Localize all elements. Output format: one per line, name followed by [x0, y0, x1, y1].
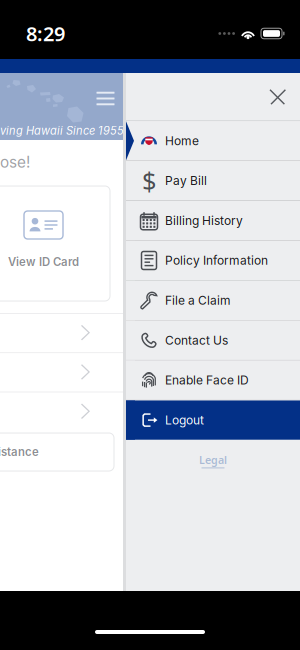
- staticText: Legal: [199, 453, 227, 467]
- staticText: Billing History: [165, 213, 243, 228]
- staticText: Pay Bill: [165, 173, 207, 188]
- button[interactable]: Logout: [126, 400, 300, 440]
- staticText: Policy Information: [165, 253, 268, 268]
- staticText: View ID Card: [8, 255, 79, 269]
- button[interactable]: Enable Face ID: [126, 361, 300, 400]
- button[interactable]: Home: [126, 121, 300, 160]
- button[interactable]: Contact Us: [126, 321, 300, 360]
- button[interactable]: $: [126, 161, 300, 200]
- staticText: File a Claim: [165, 293, 231, 308]
- staticText: $: [142, 164, 156, 197]
- button[interactable]: Menu item: [0, 392, 126, 431]
- button[interactable]: File a Claim: [126, 281, 300, 320]
- staticText: Contact Us: [165, 333, 228, 347]
- staticText: Need assistance: [0, 445, 39, 459]
- staticText: Enable Face ID: [165, 373, 249, 387]
- button[interactable]: Menu item: [0, 352, 126, 392]
- button[interactable]: Legal: [126, 440, 300, 474]
- button[interactable]: Close menu: [261, 80, 295, 114]
- staticText: ose!: [0, 153, 30, 172]
- button[interactable]: Menu item: [0, 313, 126, 352]
- button[interactable]: Billing History: [126, 201, 300, 240]
- staticText: 8:29: [26, 20, 65, 47]
- staticText: Logout: [165, 413, 204, 427]
- button[interactable]: Policy Information: [126, 241, 300, 280]
- button[interactable]: Menu: [90, 85, 120, 111]
- staticText: Home: [165, 133, 199, 148]
- staticText: ving Hawaii Since 1955: [0, 124, 124, 137]
